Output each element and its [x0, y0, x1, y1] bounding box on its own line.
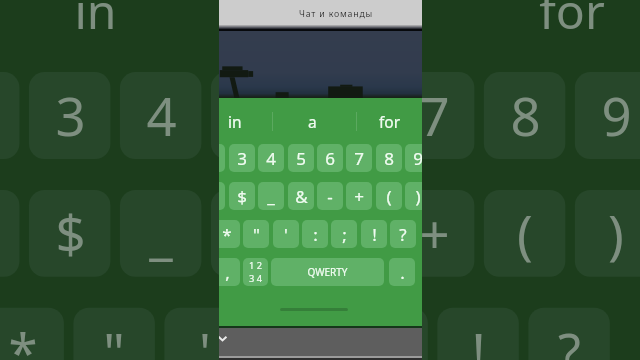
- staticText: +: [419, 198, 450, 270]
- button[interactable]: ;: [331, 220, 357, 248]
- staticText: :: [313, 223, 318, 246]
- staticText: QWERTY: [307, 265, 348, 279]
- button[interactable]: 8: [376, 144, 402, 172]
- button[interactable]: 4: [258, 144, 284, 172]
- button[interactable]: 1: [219, 182, 225, 210]
- button[interactable]: (: [376, 182, 402, 210]
- staticText: 7: [419, 80, 450, 152]
- staticText: 1 2: [249, 259, 263, 272]
- staticText: 9: [413, 147, 422, 170]
- button[interactable]: ": [243, 220, 269, 248]
- staticText: 8: [510, 80, 541, 152]
- button[interactable]: 2: [219, 144, 225, 172]
- button[interactable]: .: [389, 258, 415, 286]
- button[interactable]: QWERTY: [271, 258, 384, 286]
- staticText: ): [415, 185, 421, 208]
- button[interactable]: -: [317, 182, 343, 210]
- staticText: ?: [558, 316, 581, 360]
- staticText: ": [103, 316, 125, 360]
- button[interactable]: 3: [229, 144, 255, 172]
- button[interactable]: ?: [390, 220, 416, 248]
- staticText: 5: [296, 147, 306, 170]
- button[interactable]: 7: [346, 144, 372, 172]
- staticText: $: [55, 198, 86, 270]
- staticText: *: [222, 223, 232, 246]
- button[interactable]: Чат и команды: [219, 0, 422, 25]
- staticText: -: [335, 198, 352, 270]
- button[interactable]: !: [361, 220, 387, 248]
- staticText: *: [8, 316, 38, 360]
- staticText: !: [372, 223, 377, 246]
- button[interactable]: $: [229, 182, 255, 210]
- staticText: for: [539, 0, 605, 43]
- staticText: !: [471, 316, 486, 360]
- staticText: ?: [399, 223, 407, 246]
- staticText: ": [253, 223, 260, 246]
- staticText: a: [318, 0, 345, 43]
- staticText: ,: [225, 261, 230, 284]
- staticText: _: [267, 185, 275, 208]
- button[interactable]: 6: [317, 144, 343, 172]
- staticText: in: [74, 0, 117, 43]
- button[interactable]: *: [219, 220, 240, 248]
- staticText: a: [308, 111, 317, 132]
- staticText: :: [289, 316, 304, 360]
- button[interactable]: 5: [288, 144, 314, 172]
- staticText: 3: [55, 80, 86, 152]
- staticText: ': [199, 316, 211, 360]
- button[interactable]: :: [302, 220, 328, 248]
- staticText: 3: [237, 147, 247, 170]
- staticText: 6: [328, 80, 359, 152]
- button[interactable]: &: [288, 182, 314, 210]
- staticText: $: [237, 185, 247, 208]
- staticText: 5: [237, 80, 268, 152]
- button[interactable]: a: [285, 104, 339, 139]
- button[interactable]: ': [273, 220, 299, 248]
- staticText: 9: [601, 80, 632, 152]
- button[interactable]: _: [258, 182, 284, 210]
- button[interactable]: +: [346, 182, 372, 210]
- staticText: &: [295, 185, 308, 208]
- staticText: -: [327, 185, 333, 208]
- staticText: ': [284, 223, 288, 246]
- staticText: in: [228, 111, 242, 132]
- staticText: 8: [384, 147, 394, 170]
- button[interactable]: Numbers: [243, 258, 268, 286]
- staticText: 6: [325, 147, 335, 170]
- button[interactable]: in: [219, 104, 262, 139]
- staticText: ;: [380, 316, 395, 360]
- staticText: for: [379, 111, 401, 132]
- button[interactable]: ,: [219, 258, 240, 286]
- staticText: 4: [266, 147, 276, 170]
- button[interactable]: ): [405, 182, 422, 210]
- staticText: Чат и команды: [299, 8, 374, 20]
- staticText: 7: [354, 147, 364, 170]
- button[interactable]: for: [363, 104, 417, 139]
- staticText: 3 4: [249, 272, 263, 285]
- staticText: &: [233, 198, 272, 270]
- staticText: .: [400, 261, 405, 284]
- staticText: 4: [146, 80, 177, 152]
- button[interactable]: Collapse: [219, 334, 227, 343]
- staticText: ): [608, 198, 624, 270]
- staticText: (: [386, 185, 392, 208]
- staticText: ;: [342, 223, 347, 246]
- button[interactable]: 9: [405, 144, 422, 172]
- staticText: (: [517, 198, 533, 270]
- staticText: +: [354, 185, 364, 208]
- staticText: _: [149, 198, 173, 270]
